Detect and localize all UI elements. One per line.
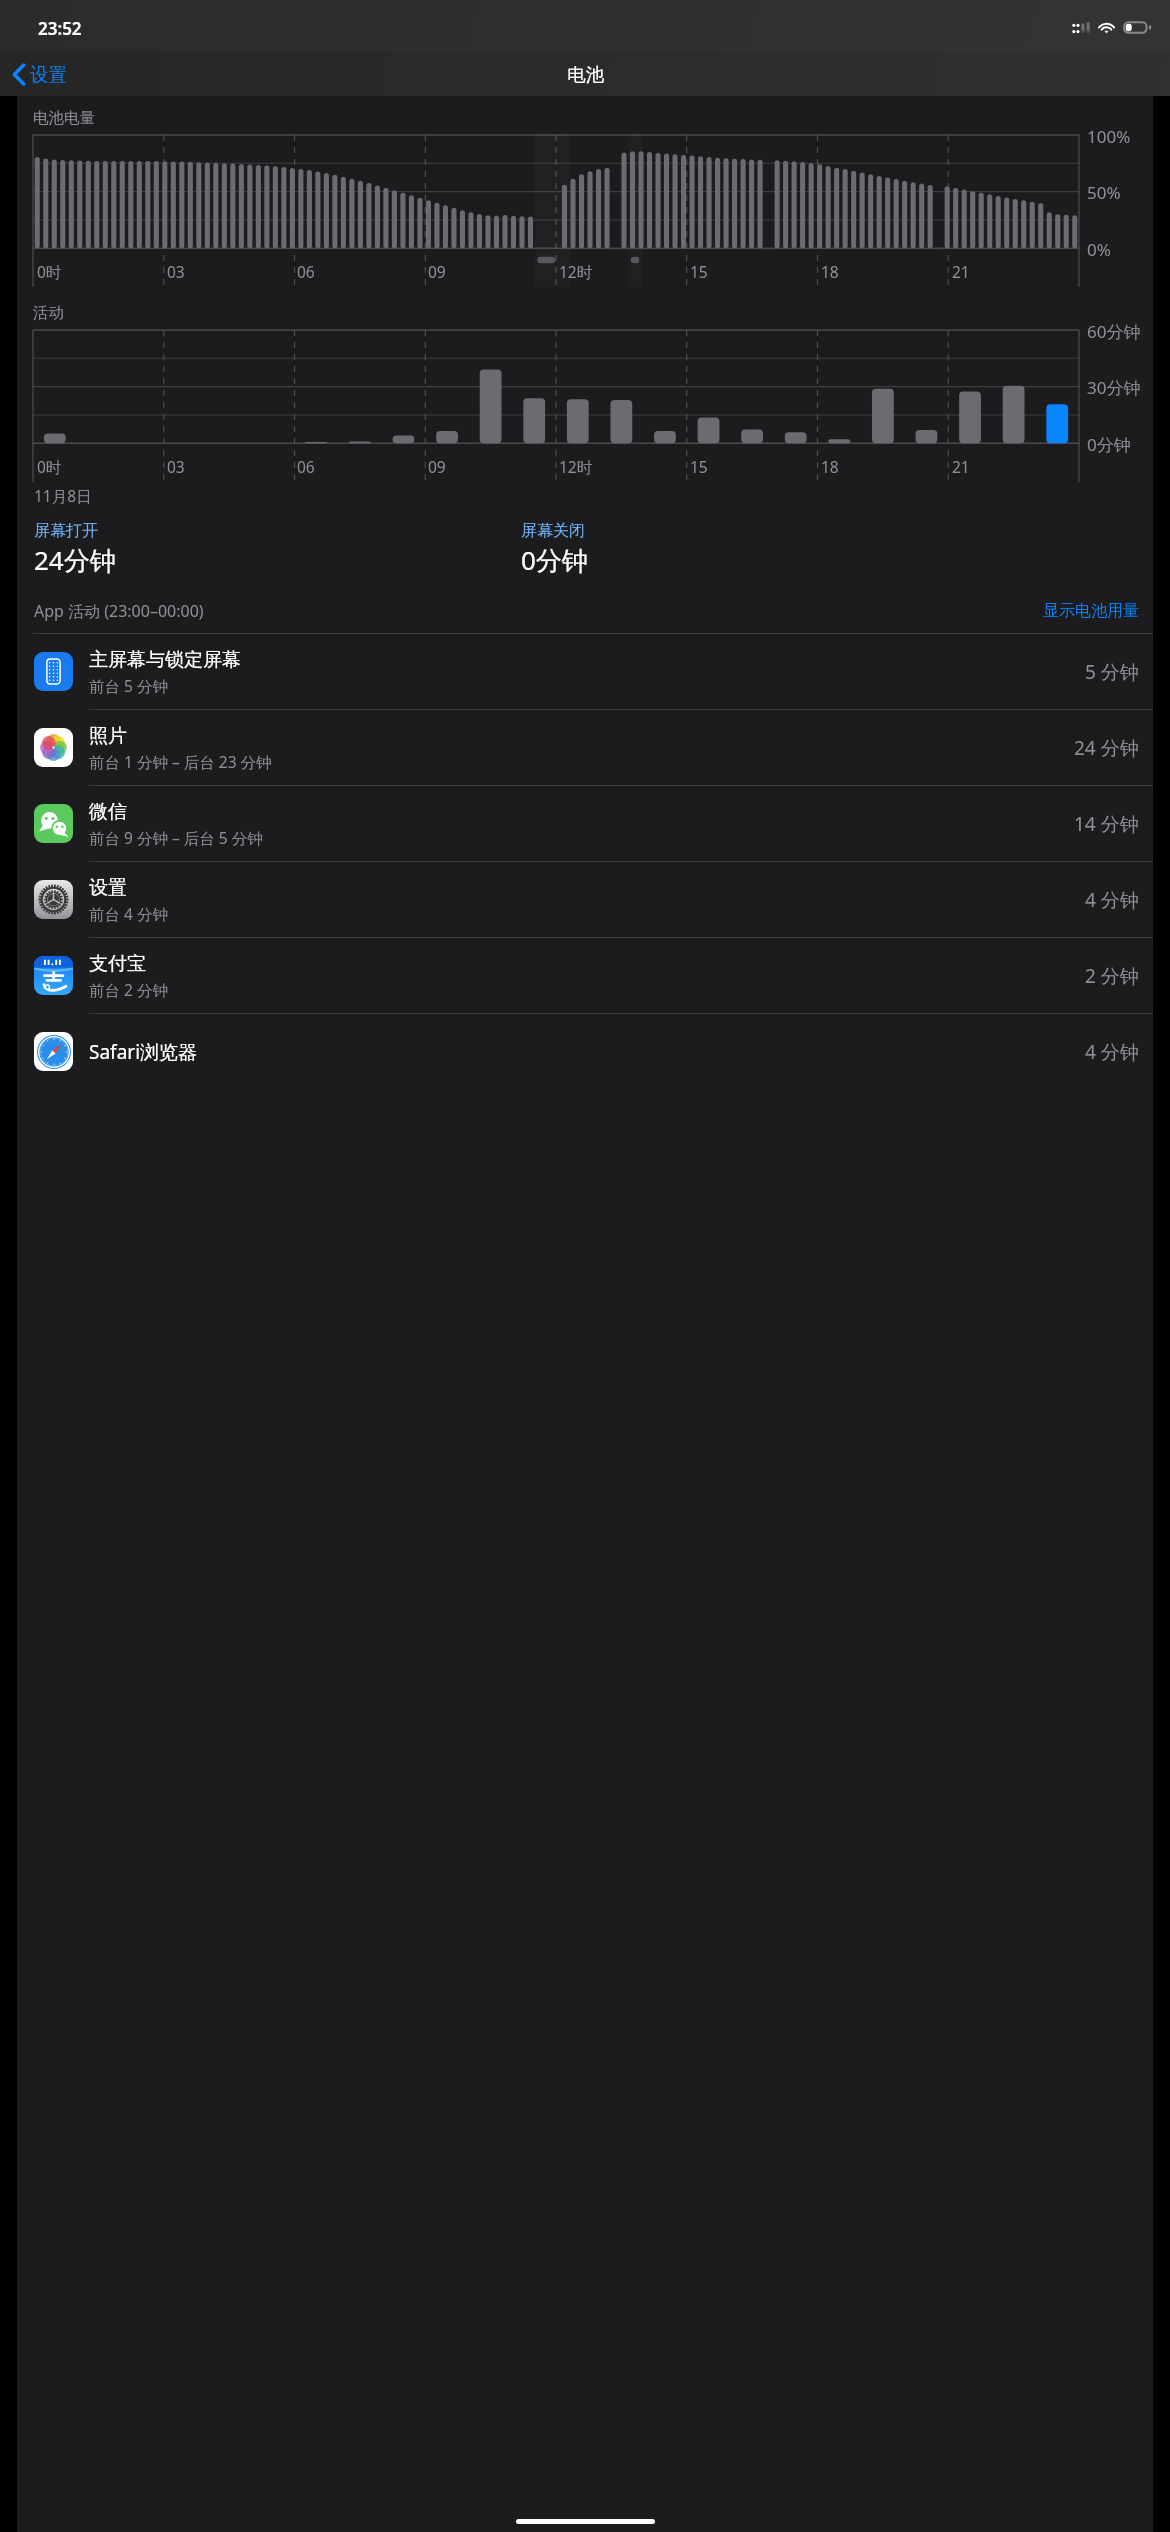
staticText: 活动 — [33, 303, 64, 323]
staticText: 24 分钟 — [1074, 735, 1139, 761]
staticText: Safari浏览器 — [89, 1039, 198, 1065]
staticText: 15 — [690, 456, 708, 477]
other: 设置 — [34, 880, 73, 919]
staticText: 12时 — [559, 261, 593, 282]
staticText: 18 — [821, 456, 839, 477]
staticText: 前台 4 分钟 — [89, 903, 168, 924]
staticText: 4 分钟 — [1085, 1039, 1139, 1065]
staticText: 5 分钟 — [1085, 659, 1139, 685]
button[interactable]: 微信 — [17, 786, 1153, 861]
staticText: 微信 — [89, 800, 127, 824]
other: Safari浏览器 — [34, 1032, 73, 1071]
staticText: 30分钟 — [1087, 376, 1141, 399]
staticText: 设置 — [89, 876, 127, 900]
staticText: 15 — [690, 261, 708, 282]
staticText: 前台 9 分钟 – 后台 5 分钟 — [89, 827, 263, 848]
staticText: 14 分钟 — [1074, 811, 1139, 837]
staticText: 显示电池用量 — [1043, 601, 1139, 621]
button[interactable]: 设置 — [17, 862, 1153, 937]
button[interactable]: Safari浏览器 — [17, 1014, 1153, 1089]
staticText: 屏幕打开 — [34, 521, 98, 541]
staticText: 24分钟 — [34, 542, 116, 578]
button[interactable]: 照片 — [17, 710, 1153, 785]
staticText: 设置 — [30, 63, 67, 86]
staticText: 100% — [1087, 125, 1131, 148]
staticText: 23:52 — [38, 17, 82, 40]
staticText: 0时 — [37, 456, 62, 477]
staticText: 06 — [297, 456, 315, 477]
staticText: 21 — [952, 456, 970, 477]
staticText: 前台 2 分钟 — [89, 979, 168, 1000]
staticText: 18 — [821, 261, 839, 282]
staticText: 21 — [952, 261, 970, 282]
staticText: 09 — [428, 456, 446, 477]
staticText: 电池 — [567, 63, 604, 86]
staticText: 0分钟 — [1087, 433, 1131, 456]
staticText: 11月8日 — [34, 485, 92, 506]
staticText: App 活动 (23:00–00:00) — [34, 600, 204, 622]
button[interactable]: 主屏幕与锁定屏幕 — [17, 634, 1153, 709]
staticText: 屏幕关闭 — [521, 521, 585, 541]
staticText: 06 — [297, 261, 315, 282]
button[interactable]: 支付宝 — [17, 938, 1153, 1013]
staticText: 4 分钟 — [1085, 887, 1139, 913]
staticText: 03 — [167, 456, 185, 477]
button[interactable]: 设置 — [0, 58, 77, 91]
staticText: 0% — [1087, 238, 1111, 261]
staticText: 主屏幕与锁定屏幕 — [89, 648, 241, 672]
staticText: 前台 5 分钟 — [89, 675, 168, 696]
staticText: 50% — [1087, 181, 1121, 204]
other: 微信 — [34, 804, 73, 843]
staticText: 前台 1 分钟 – 后台 23 分钟 — [89, 751, 272, 772]
staticText: 2 分钟 — [1085, 963, 1139, 989]
other: 支付宝 — [34, 956, 73, 995]
staticText: 支付宝 — [89, 952, 146, 976]
staticText: 09 — [428, 261, 446, 282]
staticText: 0时 — [37, 261, 62, 282]
staticText: 12时 — [559, 456, 593, 477]
staticText: 0分钟 — [521, 542, 588, 578]
staticText: 60分钟 — [1087, 320, 1141, 343]
staticText: 电池电量 — [33, 108, 95, 128]
staticText: 照片 — [89, 724, 127, 748]
other: 主屏幕与锁定屏幕 — [34, 652, 73, 691]
staticText: 03 — [167, 261, 185, 282]
other: 照片 — [34, 728, 73, 767]
button[interactable]: 显示电池用量 — [1043, 601, 1139, 621]
